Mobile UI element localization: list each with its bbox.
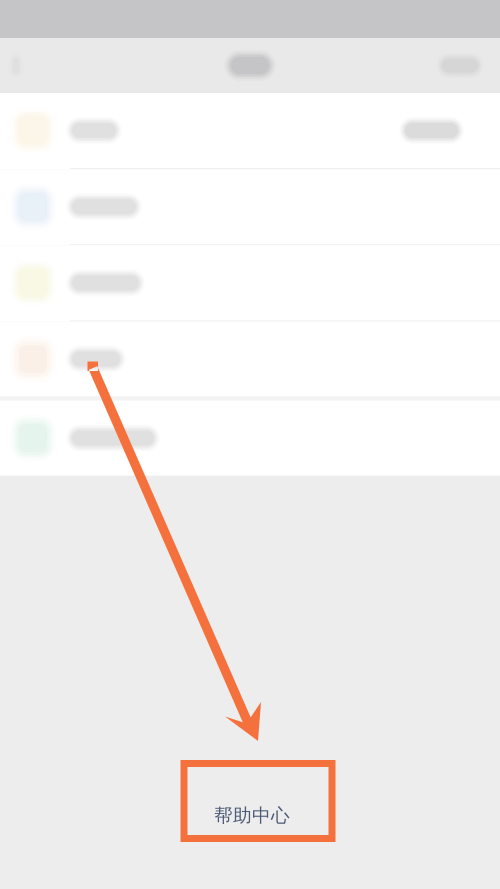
staticText: 帮助中心 bbox=[214, 804, 290, 827]
button[interactable] bbox=[0, 169, 500, 245]
button[interactable] bbox=[0, 245, 500, 322]
button[interactable] bbox=[0, 93, 500, 169]
button[interactable]: More bbox=[436, 38, 500, 93]
button[interactable] bbox=[0, 322, 500, 397]
button[interactable] bbox=[0, 401, 500, 476]
button[interactable]: 帮助中心 bbox=[180, 760, 335, 842]
